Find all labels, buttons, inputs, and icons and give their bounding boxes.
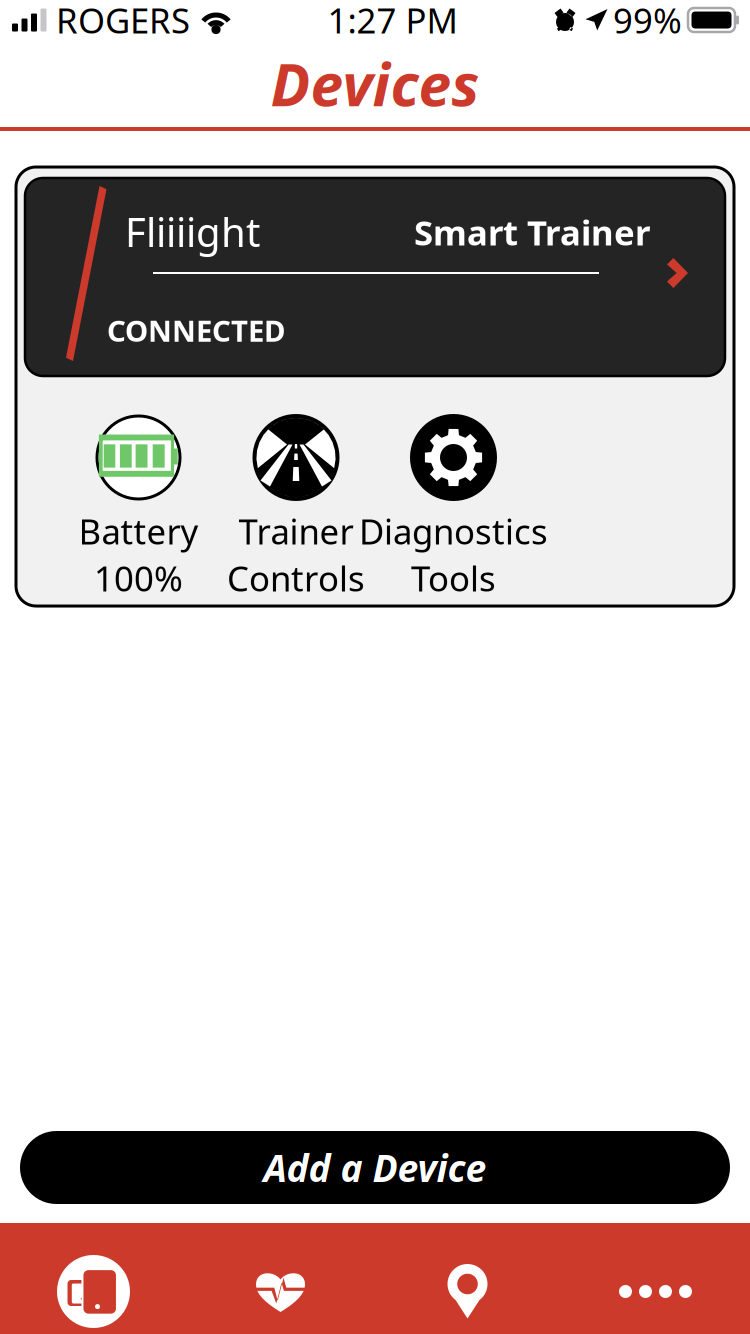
- staticText: Diagnostics: [359, 508, 548, 554]
- staticText: Trainer: [238, 508, 353, 554]
- staticText: ROGERS: [56, 0, 190, 43]
- staticText: 1:27 PM: [327, 0, 457, 43]
- staticText: CONNECTED: [107, 311, 285, 350]
- button[interactable]: Fliiiight: [16, 167, 734, 376]
- button[interactable]: Map: [374, 1223, 561, 1334]
- staticText: Controls: [227, 555, 365, 601]
- staticText: Battery: [78, 508, 198, 554]
- button[interactable]: Diagnostics: [410, 414, 497, 601]
- staticText: Add a Device: [263, 1143, 486, 1192]
- staticText: Devices: [270, 44, 479, 122]
- staticText: 99%: [613, 0, 682, 43]
- staticText: Smart Trainer: [414, 209, 650, 255]
- button[interactable]: Trainer: [252, 414, 339, 601]
- button[interactable]: Devices: [0, 1223, 187, 1334]
- staticText: Fliiiight: [125, 205, 260, 258]
- button[interactable]: Add a Device: [20, 1131, 730, 1204]
- button[interactable]: More: [561, 1223, 750, 1334]
- button[interactable]: Battery: [95, 414, 182, 601]
- staticText: Tools: [411, 555, 496, 601]
- button[interactable]: Activity: [187, 1223, 374, 1334]
- staticText: 100%: [94, 555, 183, 601]
